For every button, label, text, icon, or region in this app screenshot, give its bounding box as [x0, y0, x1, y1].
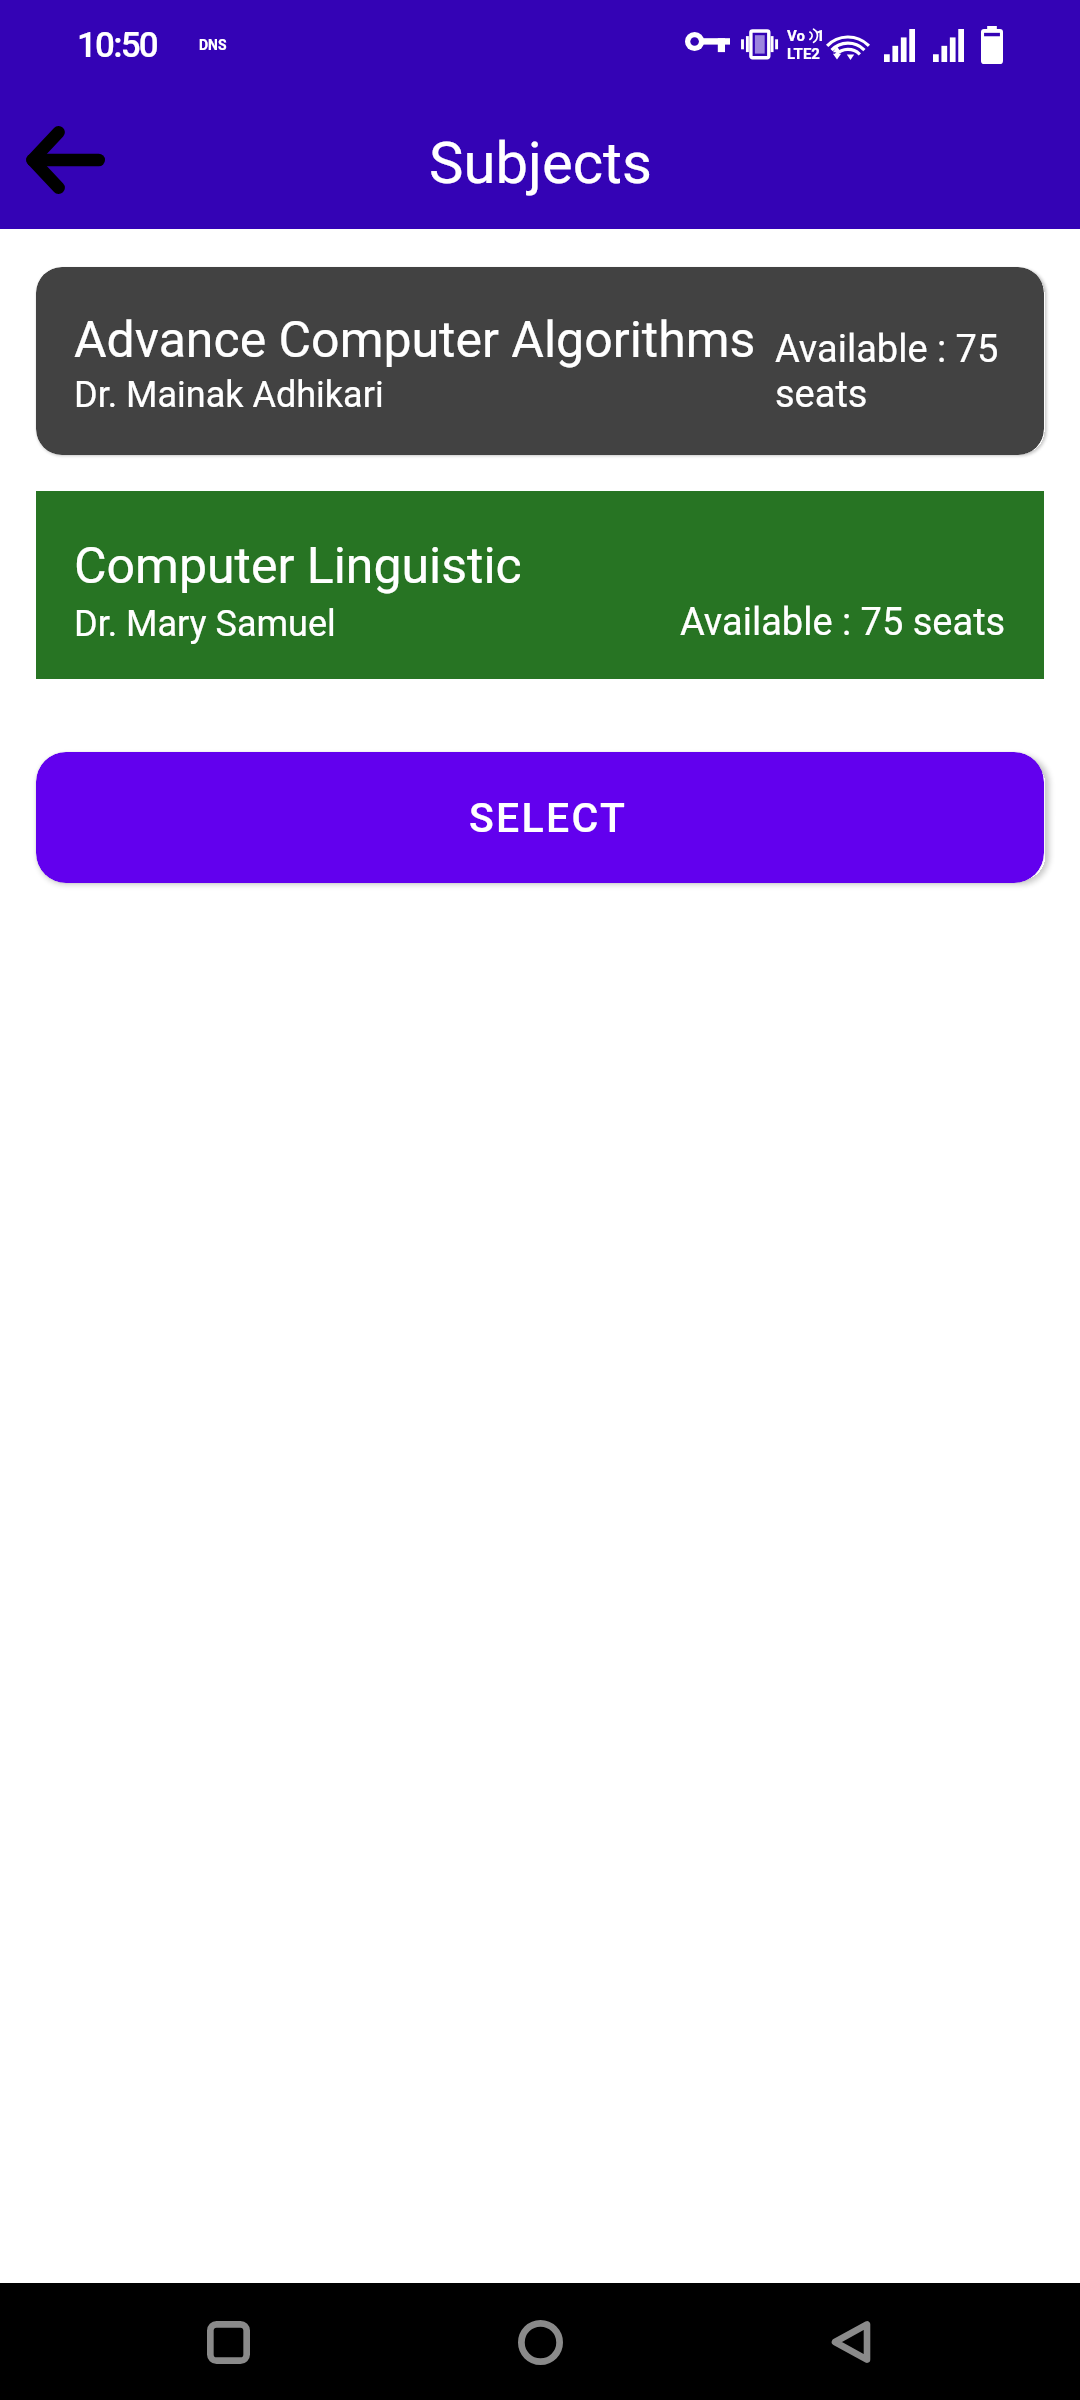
staticText: Available : 75 seats	[775, 327, 1044, 417]
staticText: Dr. Mainak Adhikari	[74, 374, 384, 416]
staticText: LTE2	[787, 45, 820, 63]
button[interactable]: Back	[10, 105, 120, 215]
staticText: Vo	[787, 27, 805, 45]
staticText: Dr. Mary Samuel	[74, 603, 336, 645]
button[interactable]: Recent apps	[178, 2292, 278, 2392]
staticText: Subjects	[429, 129, 652, 197]
button[interactable]: Advance Computer Algorithms	[36, 267, 1044, 455]
staticText: DNS	[199, 37, 227, 53]
staticText: Computer Linguistic	[74, 537, 522, 596]
staticText: SELECT	[469, 794, 628, 842]
button[interactable]: Back	[801, 2292, 901, 2392]
button[interactable]: SELECT	[36, 752, 1044, 883]
staticText: 1	[816, 27, 822, 45]
button[interactable]: Home	[490, 2292, 590, 2392]
staticText: Available : 75 seats	[680, 600, 1006, 645]
staticText: Advance Computer Algorithms	[74, 311, 756, 370]
button[interactable]: Computer Linguistic	[36, 491, 1044, 679]
staticText: 10:50	[77, 25, 157, 66]
